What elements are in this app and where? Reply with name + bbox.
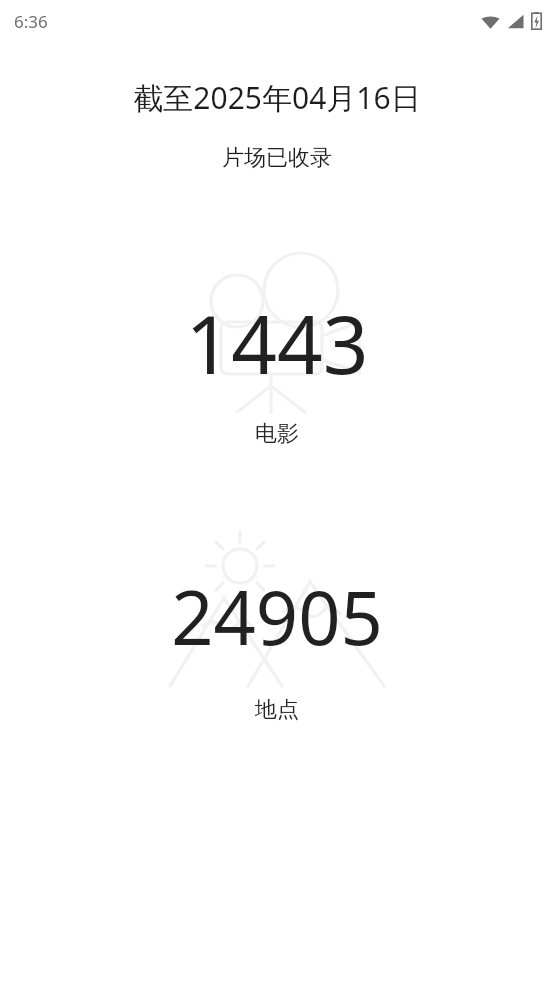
button[interactable]: 1443 bbox=[0, 250, 554, 448]
staticText: 24905 bbox=[0, 566, 554, 667]
staticText: 电影 bbox=[0, 420, 554, 448]
staticText: 片场已收录 bbox=[0, 144, 554, 172]
staticText: 地点 bbox=[0, 696, 554, 724]
button[interactable]: 24905 bbox=[0, 526, 554, 724]
staticText: 6:36 bbox=[14, 10, 48, 33]
staticText: 截至2025年04月16日 bbox=[0, 77, 554, 118]
staticText: 1443 bbox=[0, 288, 554, 397]
